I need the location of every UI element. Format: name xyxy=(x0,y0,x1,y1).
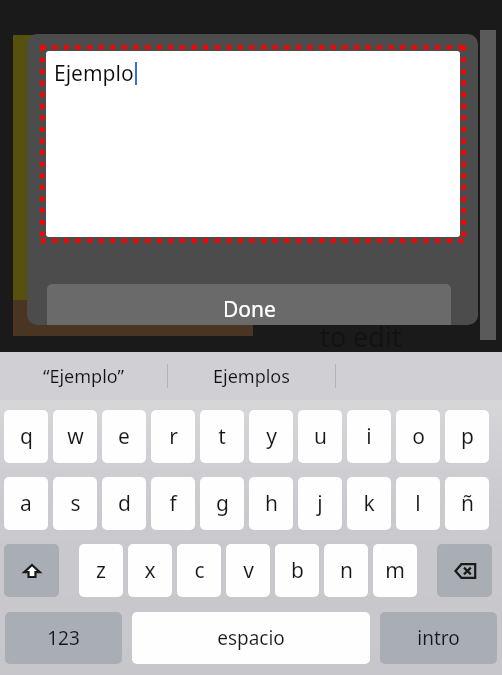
button[interactable]: p xyxy=(445,410,489,463)
staticText: z xyxy=(96,556,106,585)
button[interactable]: q xyxy=(4,410,48,463)
button[interactable]: m xyxy=(373,544,417,597)
staticText: r xyxy=(169,422,178,451)
button[interactable]: l xyxy=(396,477,440,530)
button[interactable]: “Ejemplo” xyxy=(0,352,167,400)
button[interactable]: Ejemplos xyxy=(168,352,335,400)
button[interactable]: e xyxy=(102,410,146,463)
staticText: k xyxy=(363,489,375,518)
staticText: y xyxy=(266,422,277,451)
button[interactable]: n xyxy=(324,544,368,597)
button[interactable]: ñ xyxy=(445,477,489,530)
staticText: 123 xyxy=(47,625,80,651)
button[interactable]: c xyxy=(177,544,221,597)
button[interactable]: Ejemplo xyxy=(46,51,460,237)
staticText: v xyxy=(243,556,254,585)
button[interactable]: s xyxy=(53,477,97,530)
staticText: e xyxy=(118,422,130,451)
button[interactable]: k xyxy=(347,477,391,530)
button[interactable]: 123 xyxy=(5,612,122,664)
staticText: a xyxy=(20,489,32,518)
button[interactable]: o xyxy=(396,410,440,463)
button[interactable]: z xyxy=(79,544,123,597)
button[interactable]: a xyxy=(4,477,48,530)
staticText: q xyxy=(20,422,33,451)
staticText: u xyxy=(314,422,327,451)
button[interactable]: y xyxy=(249,410,293,463)
staticText: j xyxy=(317,489,323,518)
button[interactable]: b xyxy=(275,544,319,597)
button[interactable]: x xyxy=(128,544,172,597)
staticText: g xyxy=(216,489,229,518)
button[interactable]: Shift xyxy=(4,544,59,597)
button[interactable]: espacio xyxy=(132,612,370,664)
button[interactable]: v xyxy=(226,544,270,597)
staticText: Ejemplo xyxy=(54,59,134,88)
staticText: Done xyxy=(223,295,276,324)
button[interactable]: h xyxy=(249,477,293,530)
staticText: “Ejemplo” xyxy=(43,364,124,389)
staticText: intro xyxy=(417,625,460,651)
button[interactable]: f xyxy=(151,477,195,530)
button[interactable]: Done xyxy=(47,284,451,325)
button[interactable]: intro xyxy=(380,612,497,664)
button[interactable]: r xyxy=(151,410,195,463)
staticText: d xyxy=(118,489,131,518)
staticText: Ejemplos xyxy=(213,364,290,389)
staticText: x xyxy=(144,556,156,585)
staticText: f xyxy=(169,489,177,518)
button[interactable]: i xyxy=(347,410,391,463)
staticText: espacio xyxy=(217,625,285,651)
staticText: l xyxy=(415,489,421,518)
staticText: m xyxy=(385,556,405,585)
staticText: ñ xyxy=(461,489,474,518)
button[interactable]: d xyxy=(102,477,146,530)
staticText: c xyxy=(194,556,205,585)
button[interactable]: g xyxy=(200,477,244,530)
staticText: w xyxy=(67,422,84,451)
staticText: p xyxy=(461,422,474,451)
button[interactable]: w xyxy=(53,410,97,463)
staticText: i xyxy=(366,422,372,451)
staticText: h xyxy=(265,489,278,518)
staticText: to edit xyxy=(320,318,402,352)
staticText: s xyxy=(70,489,81,518)
staticText: n xyxy=(340,556,353,585)
staticText: t xyxy=(218,422,226,451)
staticText: b xyxy=(291,556,304,585)
staticText: o xyxy=(412,422,425,451)
button[interactable]: Backspace xyxy=(437,544,492,597)
button[interactable]: j xyxy=(298,477,342,530)
button[interactable]: t xyxy=(200,410,244,463)
button[interactable]: u xyxy=(298,410,342,463)
